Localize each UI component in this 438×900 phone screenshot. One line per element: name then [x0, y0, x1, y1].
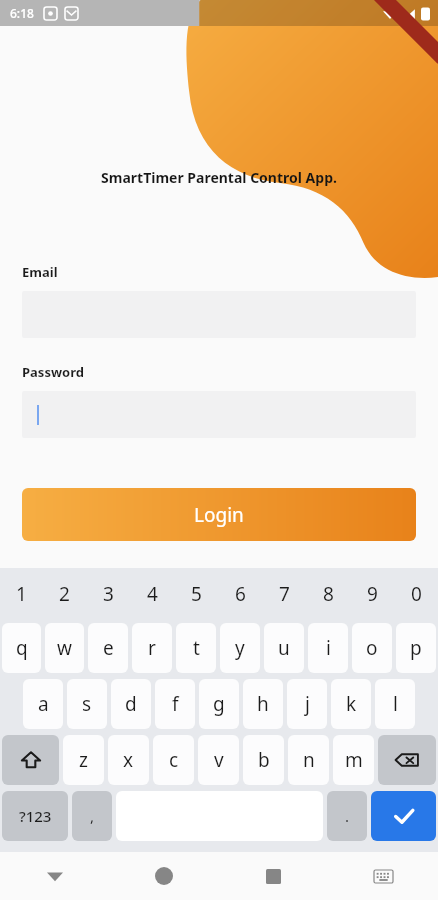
staticText: 1 [16, 581, 27, 607]
button[interactable]: j [287, 679, 327, 729]
button[interactable]: x [108, 735, 149, 785]
button[interactable]: Home [109, 852, 218, 900]
button[interactable]: 0 [394, 568, 438, 620]
button[interactable]: Recents [218, 852, 328, 900]
button[interactable]: 9 [350, 568, 394, 620]
staticText: 6 [235, 581, 246, 607]
staticText: r [148, 635, 156, 661]
staticText: Email [22, 263, 58, 281]
button[interactable]: Switch keyboard [328, 852, 438, 900]
button[interactable]: n [288, 735, 329, 785]
button[interactable]: i [308, 623, 348, 673]
staticText: l [393, 691, 398, 717]
button[interactable]: g [199, 679, 239, 729]
staticText: 9 [367, 581, 378, 607]
button[interactable]: a [23, 679, 63, 729]
staticText: b [258, 747, 270, 773]
button[interactable]: v [198, 735, 239, 785]
staticText: 2 [59, 581, 70, 607]
button[interactable]: d [111, 679, 151, 729]
button[interactable]: Backspace [378, 735, 436, 785]
button[interactable]: c [153, 735, 194, 785]
staticText: SmartTimer Parental Control App. [0, 168, 438, 187]
staticText: d [125, 691, 137, 717]
staticText: , [90, 806, 95, 826]
staticText: c [169, 747, 179, 773]
staticText: h [257, 691, 269, 717]
button[interactable]: h [243, 679, 283, 729]
staticText: v [214, 747, 224, 773]
button[interactable]: 5 [174, 568, 218, 620]
button[interactable]: l [375, 679, 415, 729]
staticText: e [103, 635, 114, 661]
staticText: 5 [191, 581, 202, 607]
staticText: k [346, 691, 357, 717]
button[interactable]: r [132, 623, 172, 673]
staticText: . [345, 806, 350, 826]
button[interactable]: ?123 [2, 791, 68, 841]
staticText: 3 [103, 581, 114, 607]
staticText: 0 [411, 581, 422, 607]
staticText: t [193, 635, 200, 661]
staticText: x [123, 747, 134, 773]
button[interactable]: k [331, 679, 371, 729]
staticText: p [410, 635, 422, 661]
button[interactable]: 7 [262, 568, 306, 620]
button[interactable]: m [333, 735, 374, 785]
button[interactable]: , [72, 791, 112, 841]
button[interactable]: Shift [2, 735, 59, 785]
staticText: 7 [279, 581, 290, 607]
button[interactable]: b [243, 735, 284, 785]
staticText: f [172, 691, 179, 717]
button[interactable]: . [327, 791, 367, 841]
button[interactable]: e [88, 623, 128, 673]
staticText: Login [194, 502, 244, 528]
button[interactable]: Login [22, 488, 416, 541]
button[interactable]: q [2, 623, 41, 673]
staticText: 6:18 [10, 5, 34, 21]
staticText: Password [22, 363, 84, 381]
button[interactable]: f [155, 679, 195, 729]
button[interactable]: 8 [306, 568, 350, 620]
staticText: a [38, 691, 49, 717]
staticText: ?123 [19, 806, 52, 826]
button[interactable]: Back [0, 852, 109, 900]
staticText: m [345, 747, 363, 773]
button[interactable]: p [396, 623, 436, 673]
staticText: o [366, 635, 378, 661]
staticText: u [278, 635, 290, 661]
staticText: 4 [147, 581, 158, 607]
button[interactable]: 1 [0, 568, 43, 620]
button[interactable]: 3 [86, 568, 130, 620]
button[interactable]: 6 [218, 568, 262, 620]
button[interactable]: y [220, 623, 260, 673]
staticText: n [303, 747, 315, 773]
staticText: q [16, 635, 28, 661]
staticText: 8 [323, 581, 334, 607]
button[interactable]: 2 [43, 568, 86, 620]
button[interactable]: u [264, 623, 304, 673]
button[interactable] [22, 391, 416, 438]
staticText: j [305, 691, 310, 717]
button[interactable]: 4 [130, 568, 174, 620]
button[interactable]: z [63, 735, 104, 785]
staticText: s [82, 691, 92, 717]
staticText: z [79, 747, 88, 773]
staticText: i [326, 635, 331, 661]
button[interactable]: w [45, 623, 84, 673]
button[interactable]: Enter [371, 791, 436, 841]
staticText: y [235, 635, 245, 661]
staticText: g [213, 691, 225, 717]
button[interactable]: t [176, 623, 216, 673]
button[interactable]: o [352, 623, 392, 673]
staticText: w [57, 635, 72, 661]
button[interactable]: s [67, 679, 107, 729]
